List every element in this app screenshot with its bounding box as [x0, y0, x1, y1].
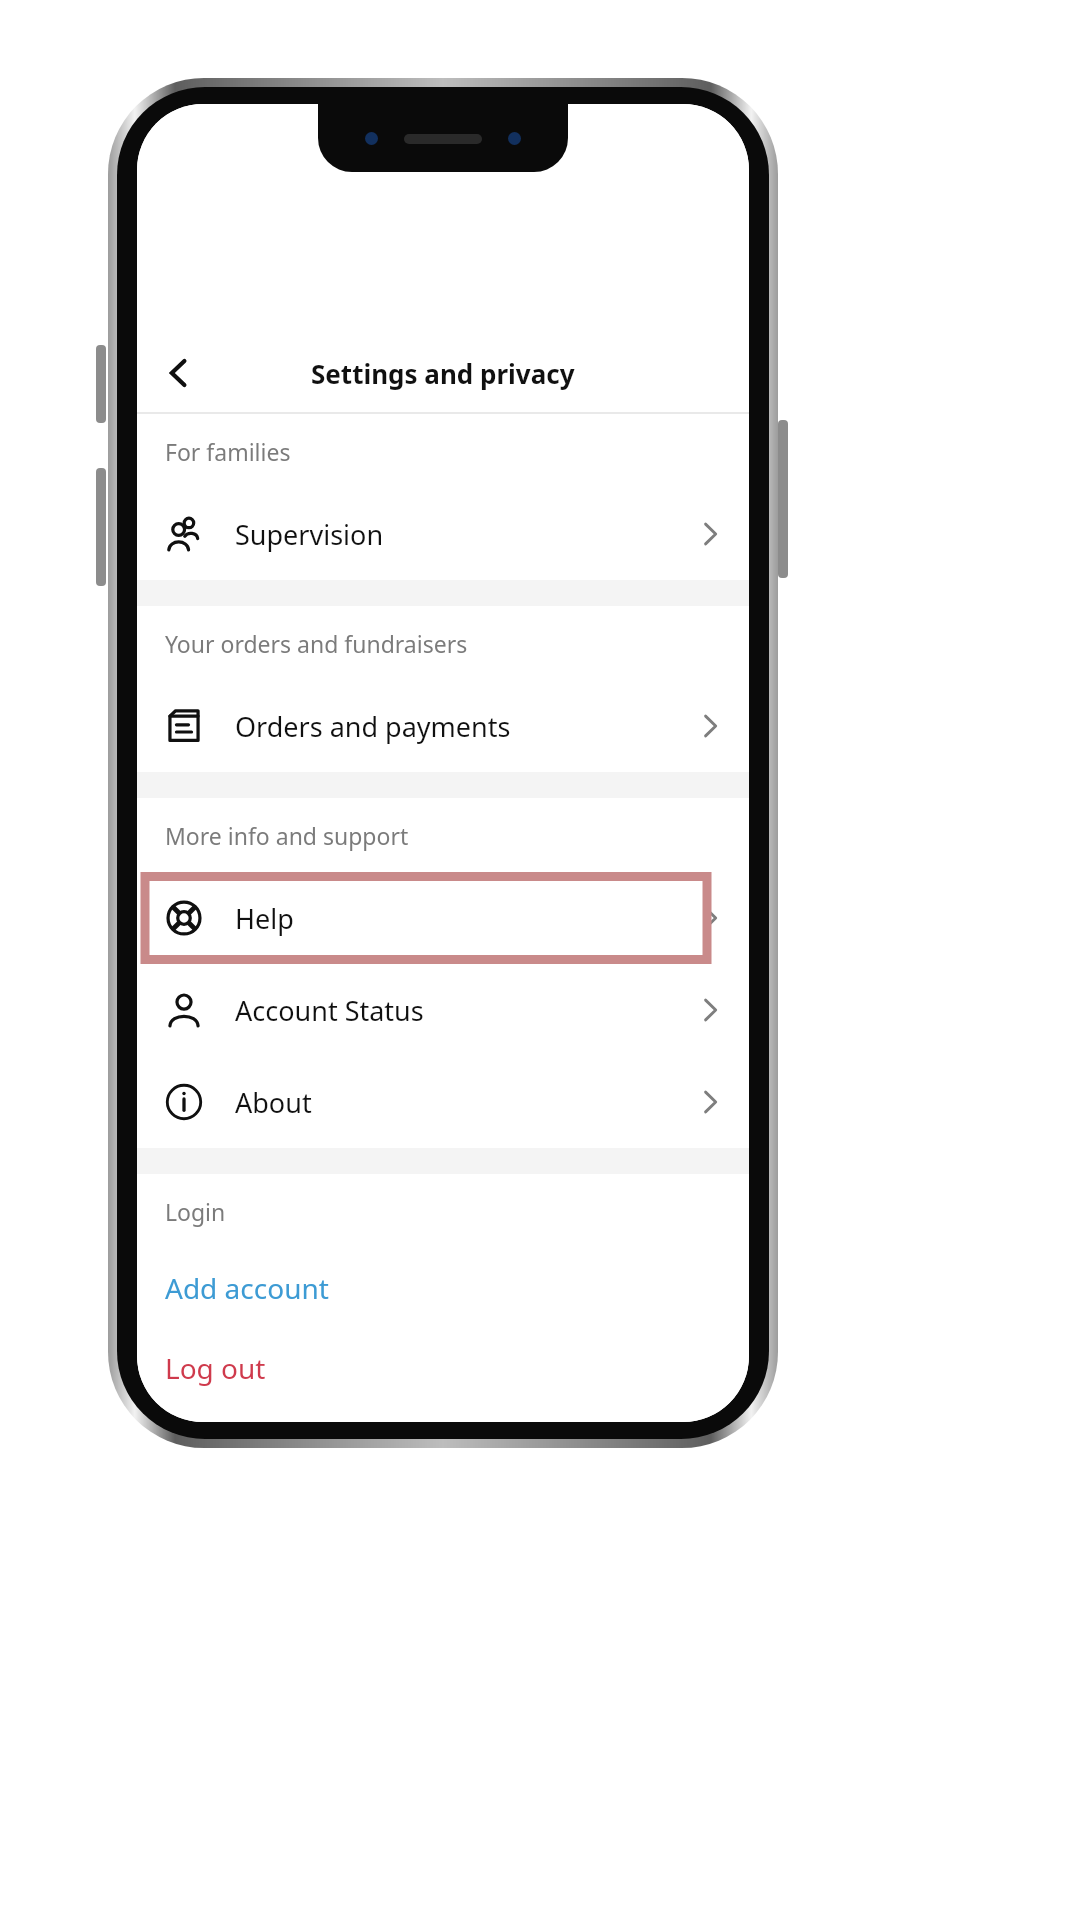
staticText: Login	[165, 1196, 226, 1227]
staticText: Supervision	[235, 516, 384, 553]
button[interactable]: Supervision	[137, 488, 749, 580]
button[interactable]: Account Status	[137, 964, 749, 1056]
staticText: Account Status	[235, 992, 424, 1029]
button[interactable]: Help	[137, 872, 749, 964]
staticText: Help	[235, 900, 294, 937]
button[interactable]: Back	[147, 341, 211, 405]
staticText: Your orders and fundraisers	[165, 628, 468, 659]
button[interactable]: About	[137, 1056, 749, 1148]
staticText: About	[235, 1084, 312, 1121]
staticText: For families	[165, 436, 291, 467]
staticText: Orders and payments	[235, 708, 511, 745]
staticText: Settings and privacy	[311, 356, 575, 391]
button[interactable]: Log out	[137, 1328, 749, 1408]
staticText: Add account	[165, 1269, 329, 1307]
staticText: More info and support	[165, 820, 409, 851]
button[interactable]: Orders and payments	[137, 680, 749, 772]
staticText: Log out	[165, 1349, 266, 1387]
button[interactable]: Add account	[137, 1248, 749, 1328]
